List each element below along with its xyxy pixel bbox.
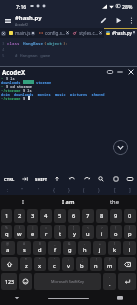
button[interactable]: * — [20, 257, 32, 271]
staticText: [ — [114, 187, 116, 194]
button[interactable]: { — [110, 225, 122, 239]
button[interactable]: 8 — [96, 209, 108, 223]
button[interactable]: I — [0, 195, 45, 208]
button[interactable]: & — [63, 241, 76, 255]
button[interactable]: , — [103, 273, 116, 290]
staticText: k — [113, 246, 117, 254]
button[interactable]: ( — [108, 241, 121, 255]
button[interactable]: = — [40, 225, 52, 239]
staticText: I — [22, 198, 24, 206]
staticText: : — [68, 257, 69, 262]
button[interactable]: Microsoft SwiftKey — [34, 273, 101, 290]
staticText: downloads — [1, 80, 21, 84]
button[interactable]: | — [27, 225, 38, 239]
button[interactable]: config.s… — [37, 28, 71, 38]
button[interactable]: Tab — [18, 173, 31, 185]
button[interactable]: + — [93, 241, 106, 255]
button[interactable]: the — [91, 195, 137, 208]
button[interactable]: 5 — [54, 209, 66, 223]
button[interactable]: Hide keyboard — [0, 291, 34, 305]
button[interactable]: Run — [112, 14, 125, 27]
button[interactable]: 123 — [1, 273, 17, 290]
button[interactable]: Undo — [65, 173, 78, 185]
button[interactable]: New session — [105, 67, 115, 76]
button[interactable]: " — [34, 257, 46, 271]
button[interactable]: : — [2, 185, 13, 195]
button[interactable]: - — [78, 241, 91, 255]
button[interactable]: 6 — [68, 209, 80, 223]
button[interactable]: CTRL — [1, 173, 17, 185]
button[interactable]: #hash.py — [104, 28, 137, 38]
button[interactable]: Move up — [50, 173, 63, 185]
staticText: } — [68, 187, 70, 194]
button[interactable]: Emoji — [19, 273, 32, 290]
button[interactable]: < — [82, 225, 94, 239]
button[interactable]: } — [63, 185, 74, 195]
button[interactable]: Close tab — [0, 28, 7, 38]
staticText: y — [73, 230, 76, 238]
button[interactable]: Close — [125, 67, 136, 76]
button[interactable]: Close config.s… — [66, 30, 69, 36]
button[interactable]: main.js — [7, 28, 37, 38]
button[interactable]: $ — [33, 241, 46, 255]
button[interactable]: 2 — [14, 209, 25, 223]
button[interactable]: Backspace — [118, 257, 136, 271]
button[interactable]: Scroll to bottom — [113, 140, 128, 155]
button[interactable]: ; — [76, 257, 88, 271]
button[interactable]: Close main.js — [31, 30, 35, 36]
button[interactable]: 1 — [1, 209, 12, 223]
button[interactable]: Close #hash.py — [133, 30, 135, 36]
button[interactable]: ) — [93, 185, 104, 195]
button[interactable]: _ — [48, 241, 61, 255]
button[interactable]: ' — [48, 257, 60, 271]
button[interactable]: : — [62, 257, 74, 271]
button[interactable]: ' — [33, 185, 44, 195]
button[interactable]: Enter — [118, 273, 136, 290]
button[interactable]: " — [17, 185, 28, 195]
staticText: v — [67, 262, 70, 270]
button[interactable]: % — [1, 225, 12, 239]
button[interactable]: Close styles.c… — [99, 30, 102, 36]
staticText: #hash.py — [15, 14, 42, 22]
button[interactable]: Switch keyboard — [103, 291, 137, 305]
button[interactable]: ( — [78, 185, 89, 195]
button[interactable]: 3 — [27, 209, 38, 223]
staticText: ( — [83, 187, 85, 194]
button[interactable]: } — [124, 225, 136, 239]
staticText: ] — [129, 187, 131, 194]
button[interactable]: [ — [109, 185, 120, 195]
staticText: ' — [54, 257, 55, 262]
button[interactable]: Redo — [80, 173, 93, 185]
button[interactable]: Menu — [0, 13, 15, 28]
button[interactable]: ? — [104, 257, 116, 271]
button[interactable]: ] — [124, 185, 135, 195]
button[interactable]: 4 — [40, 209, 52, 223]
button[interactable]: 0 — [124, 209, 136, 223]
staticText: dcim downloads movies music pictures sha… — [1, 92, 105, 96]
button[interactable]: styles.c… — [71, 28, 104, 38]
button[interactable]: SHIFT — [33, 173, 49, 185]
staticText: 8 — [100, 212, 104, 220]
button[interactable]: 9 — [110, 209, 122, 223]
staticText: h — [83, 246, 87, 254]
button[interactable]: More options — [126, 15, 137, 26]
button[interactable]: ] — [68, 225, 80, 239]
button[interactable]: # — [17, 241, 31, 255]
button[interactable]: Minimize — [115, 67, 125, 76]
button[interactable]: Select all — [109, 173, 122, 185]
button[interactable]: > — [96, 225, 108, 239]
button[interactable]: Hide keyboard — [123, 173, 136, 185]
button[interactable]: @ — [1, 241, 15, 255]
button[interactable]: ) — [123, 241, 136, 255]
button[interactable]: I am — [45, 195, 91, 208]
button[interactable]: Edit — [97, 14, 110, 27]
button[interactable]: 7 — [82, 209, 94, 223]
button[interactable]: Search — [94, 173, 107, 185]
staticText: \ — [19, 225, 21, 230]
staticText: # — [23, 241, 26, 246]
button[interactable]: [ — [54, 225, 66, 239]
button[interactable]: ! — [90, 257, 102, 271]
button[interactable]: \ — [14, 225, 25, 239]
button[interactable]: Shift — [1, 257, 18, 271]
button[interactable]: { — [48, 185, 59, 195]
